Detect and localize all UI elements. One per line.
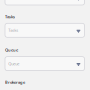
button[interactable] — [5, 0, 84, 5]
staticText: Queue — [8, 61, 19, 66]
staticText: Tasks — [8, 28, 18, 33]
staticText: Tasks — [5, 14, 15, 19]
button[interactable]: Queue — [5, 57, 84, 71]
staticText: Brokerage — [5, 80, 25, 85]
staticText: Queue — [5, 47, 18, 53]
button[interactable]: Tasks — [5, 23, 84, 37]
